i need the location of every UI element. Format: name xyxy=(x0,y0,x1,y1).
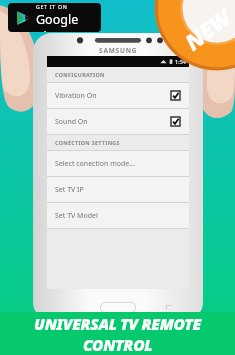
staticText: GET IT ON xyxy=(36,3,68,10)
staticText: Vibration On xyxy=(55,91,97,101)
staticText: Google Play xyxy=(36,11,94,32)
staticText: Set TV IP xyxy=(55,185,84,195)
staticText: NEW xyxy=(178,1,235,56)
button[interactable]: Sound On xyxy=(47,109,189,134)
staticText: Sound On xyxy=(55,117,88,127)
button[interactable]: Vibration On xyxy=(47,83,189,108)
staticText: Set TV Model xyxy=(55,211,98,221)
button[interactable]: Home xyxy=(100,302,136,313)
staticText: 1:54 xyxy=(175,58,186,65)
button[interactable]: Set TV IP xyxy=(47,177,189,202)
staticText: CONFIGURATION xyxy=(55,71,105,78)
staticText: Select conection mode... xyxy=(55,159,135,169)
button[interactable]: Set TV Model xyxy=(47,203,189,228)
button[interactable]: Select conection mode... xyxy=(47,151,189,176)
staticText: UNIVERSAL TV REMOTE CONTROL xyxy=(0,313,235,355)
button[interactable]: New xyxy=(153,0,235,82)
staticText: CONECTION SETTINGS xyxy=(55,139,120,146)
button[interactable]: Get it on Google Play xyxy=(8,3,101,32)
staticText: SAMSUNG xyxy=(99,46,138,55)
